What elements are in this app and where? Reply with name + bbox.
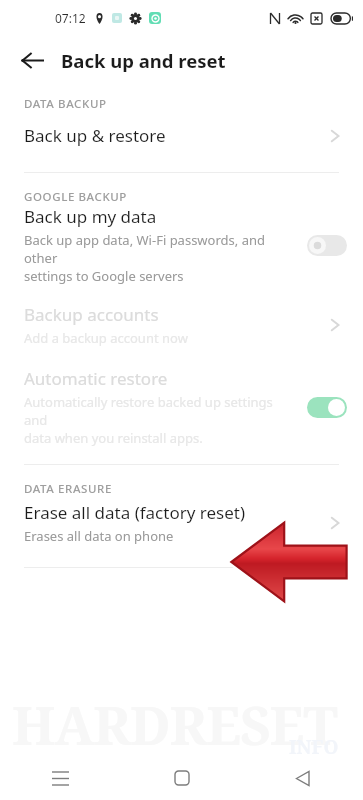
staticText: 07:12 xyxy=(55,10,86,26)
button[interactable]: Back xyxy=(10,38,54,82)
staticText: Automatically restore backed up settings… xyxy=(24,393,299,447)
button[interactable]: Erase all data (factory reset) xyxy=(0,497,363,545)
button[interactable]: Backup accounts xyxy=(0,303,363,347)
staticText: Backup accounts xyxy=(24,303,159,326)
staticText: Erase all data (factory reset) xyxy=(24,501,246,524)
button[interactable]: Back up my data xyxy=(0,205,363,285)
staticText: HARDRESET xyxy=(12,688,337,760)
staticText: INFO xyxy=(289,734,339,760)
staticText: Erases all data on phone xyxy=(24,527,174,545)
button[interactable]: Recent apps xyxy=(0,756,121,800)
staticText: GOOGLE BACKUP xyxy=(24,189,127,205)
staticText: Back up app data, Wi-Fi passwords, and o… xyxy=(24,231,299,285)
staticText: Automatic restore xyxy=(24,367,168,390)
staticText: DATA BACKUP xyxy=(24,96,107,112)
button[interactable]: Back xyxy=(242,756,363,800)
staticText: Back up & restore xyxy=(24,124,327,147)
staticText: Back up and reset xyxy=(61,48,226,73)
button[interactable]: Back up & restore xyxy=(0,112,363,163)
staticText: Add a backup account now xyxy=(24,329,188,347)
button[interactable]: On xyxy=(307,397,347,418)
staticText: DATA ERASURE xyxy=(24,481,112,497)
button[interactable]: Off xyxy=(307,235,347,256)
button[interactable]: Home xyxy=(121,756,242,800)
button[interactable]: Automatic restore xyxy=(0,367,363,447)
staticText: Back up my data xyxy=(24,205,157,228)
